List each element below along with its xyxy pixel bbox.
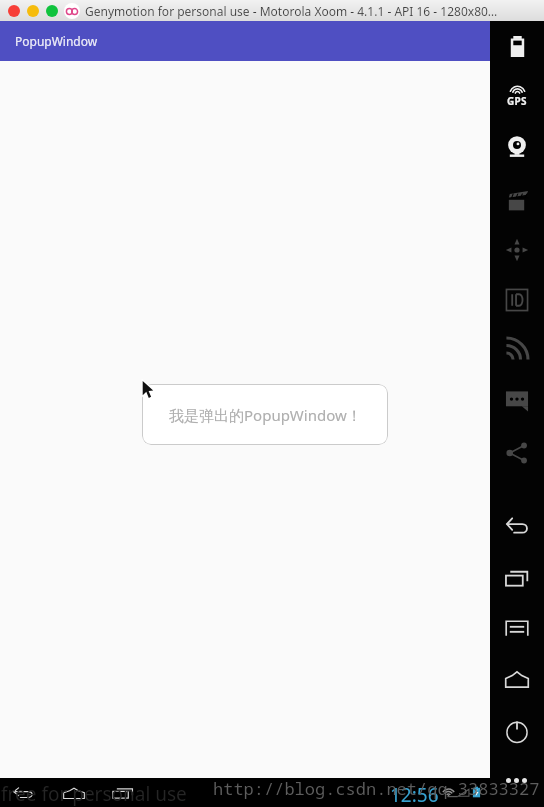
staticText: free for personal use (1, 781, 187, 807)
button[interactable]: Menu (501, 612, 533, 644)
button[interactable]: Recent apps (501, 562, 533, 594)
button[interactable]: Zoom window (46, 5, 58, 17)
button[interactable]: Battery (501, 30, 533, 62)
button[interactable]: GPS (501, 79, 533, 111)
button[interactable]: Identifiers (501, 284, 533, 316)
button[interactable]: Network (501, 333, 533, 365)
button[interactable]: Share (501, 437, 533, 469)
button[interactable]: Minimize window (27, 5, 39, 17)
staticText: PopupWindow (15, 33, 98, 49)
button[interactable]: 我是弹出的PopupWindow！ (142, 384, 388, 445)
button[interactable]: Video (501, 185, 533, 217)
button[interactable]: Recent apps (106, 778, 140, 807)
staticText: 12:56 (390, 782, 439, 807)
button[interactable]: Home (57, 778, 91, 807)
staticText: Genymotion for personal use - Motorola X… (85, 3, 498, 19)
button[interactable]: Close window (8, 5, 20, 17)
staticText: http://blog.csdn.net/qq_33833327 (213, 777, 540, 800)
button[interactable]: Power (501, 715, 533, 747)
button[interactable]: Genymotion (64, 3, 80, 19)
button[interactable]: Messaging (501, 385, 533, 417)
button[interactable]: Back (6, 778, 40, 807)
button[interactable]: Accelerometer (501, 234, 533, 266)
button[interactable]: Camera (501, 131, 533, 163)
staticText: 我是弹出的PopupWindow！ (169, 405, 362, 425)
staticText: GPS (507, 94, 527, 108)
button[interactable]: Back (501, 510, 533, 542)
button[interactable]: Home (501, 663, 533, 695)
button[interactable]: More (506, 778, 527, 783)
button[interactable]: PopupWindow (0, 21, 490, 61)
